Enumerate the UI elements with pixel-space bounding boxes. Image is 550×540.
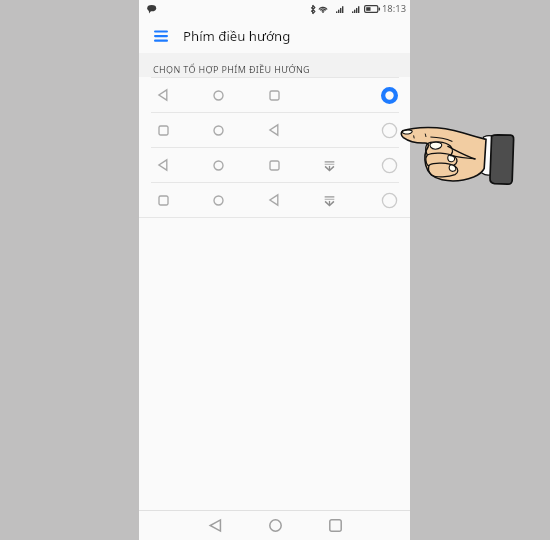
button[interactable]: Back, Home, Recents, Hide keyboard — [139, 148, 410, 182]
staticText: Phím điều hướng — [183, 27, 291, 45]
button[interactable]: Recents, Home, Back — [139, 113, 410, 147]
button[interactable]: Back, Home, Recents — [139, 78, 410, 112]
staticText: CHỌN TỔ HỢP PHÍM ĐIỀU HƯỚNG — [153, 63, 310, 75]
button[interactable]: Home — [257, 511, 293, 540]
button[interactable]: Back — [197, 511, 233, 540]
button[interactable]: Recents — [317, 511, 353, 540]
button[interactable]: Menu — [148, 23, 174, 49]
staticText: 18:13 — [382, 2, 407, 15]
button[interactable]: Recents, Home, Back, Hide keyboard — [139, 183, 410, 217]
